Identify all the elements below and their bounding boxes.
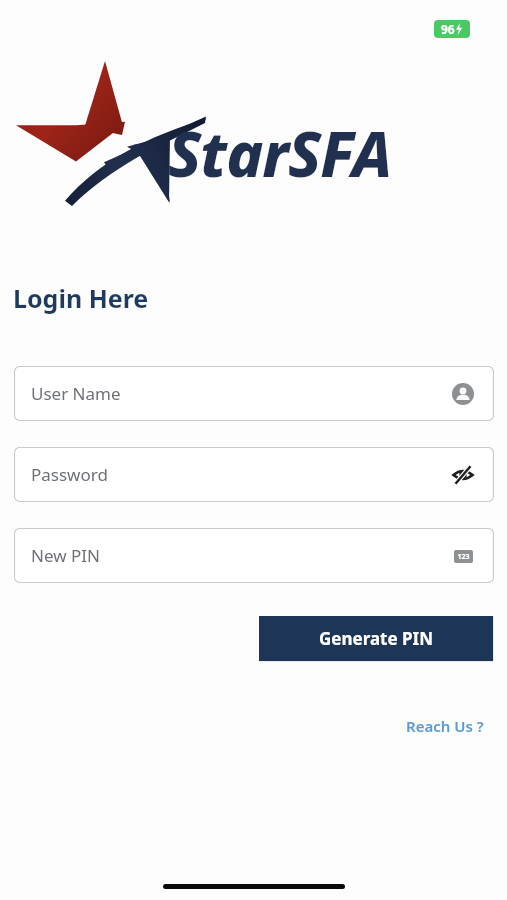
button[interactable]: Reach Us ? <box>384 712 496 740</box>
button[interactable]: Password <box>14 447 494 502</box>
staticText: Login Here <box>13 281 149 315</box>
button[interactable]: New PIN <box>14 528 494 583</box>
button[interactable]: Generate PIN <box>259 616 493 661</box>
button[interactable]: User Name <box>14 366 494 421</box>
button[interactable]: User name <box>450 381 476 407</box>
staticText: User Name <box>31 382 121 405</box>
staticText: Generate PIN <box>319 627 434 650</box>
button[interactable]: Show password <box>450 462 476 488</box>
staticText: Reach Us ? <box>406 716 484 736</box>
staticText: New PIN <box>31 544 100 567</box>
staticText: StarSFA <box>168 111 392 195</box>
staticText: 123 <box>457 552 470 562</box>
staticText: Password <box>31 463 108 486</box>
button[interactable]: Numeric keypad <box>450 543 476 569</box>
staticText: 96 <box>441 21 455 37</box>
